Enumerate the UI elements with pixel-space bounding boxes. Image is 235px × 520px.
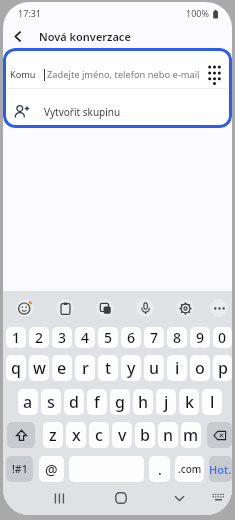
staticText: 3 xyxy=(58,328,67,347)
button[interactable]: y xyxy=(121,355,141,381)
staticText: j xyxy=(164,391,169,413)
staticText: m xyxy=(183,424,199,446)
staticText: 17:31 xyxy=(18,7,42,19)
staticText: v xyxy=(118,424,127,446)
button[interactable] xyxy=(125,291,165,325)
button[interactable]: s xyxy=(41,389,61,415)
button[interactable]: .com xyxy=(175,456,204,482)
staticText: z xyxy=(49,424,57,446)
staticText: 8 xyxy=(173,328,182,347)
button[interactable] xyxy=(45,291,85,325)
button[interactable]: 6 xyxy=(121,327,141,348)
button[interactable]: q xyxy=(6,355,26,381)
staticText: t xyxy=(105,357,112,379)
button[interactable]: @ xyxy=(39,456,64,482)
button[interactable] xyxy=(11,27,25,45)
staticText: Hot. xyxy=(209,462,232,477)
staticText: u xyxy=(149,357,160,379)
button[interactable] xyxy=(109,489,133,507)
button[interactable]: Komu xyxy=(10,61,221,88)
button[interactable]: f xyxy=(87,389,107,415)
button[interactable]: o xyxy=(190,355,210,381)
staticText: 4 xyxy=(81,328,90,347)
button[interactable]: 5 xyxy=(98,327,118,348)
staticText: Nová konverzace xyxy=(39,29,131,44)
button[interactable]: 4 xyxy=(75,327,95,348)
button[interactable]: 1 xyxy=(6,327,26,348)
staticText: r xyxy=(82,357,89,379)
staticText: 100% xyxy=(186,7,209,19)
button[interactable]: z xyxy=(43,422,63,448)
button[interactable]: i xyxy=(167,355,187,381)
staticText: 9 xyxy=(196,328,205,347)
button[interactable]: p xyxy=(213,355,232,381)
button[interactable]: u xyxy=(144,355,164,381)
staticText: b xyxy=(140,424,150,446)
staticText: .com xyxy=(178,462,202,476)
button[interactable]: m xyxy=(181,422,201,448)
staticText: e xyxy=(57,357,67,379)
button[interactable]: l xyxy=(202,389,222,415)
button[interactable] xyxy=(7,422,35,448)
button[interactable]: a xyxy=(18,389,38,415)
staticText: w xyxy=(33,357,46,379)
staticText: i xyxy=(175,357,180,379)
button[interactable] xyxy=(165,291,205,325)
button[interactable]: 8 xyxy=(167,327,187,348)
button[interactable]: g xyxy=(110,389,130,415)
staticText: Vytvořit skupinu xyxy=(44,105,121,119)
button[interactable]: d xyxy=(64,389,84,415)
button[interactable]: Hot. xyxy=(209,456,232,482)
button[interactable]: t xyxy=(98,355,118,381)
staticText: . xyxy=(158,460,162,479)
staticText: n xyxy=(163,424,174,446)
staticText: k xyxy=(185,391,194,413)
staticText: p xyxy=(218,357,228,379)
staticText: f xyxy=(94,391,100,413)
button[interactable] xyxy=(205,291,232,325)
button[interactable] xyxy=(5,291,45,325)
button[interactable] xyxy=(85,291,125,325)
button[interactable]: v xyxy=(112,422,132,448)
staticText: q xyxy=(11,357,21,379)
staticText: 6 xyxy=(127,328,136,347)
button[interactable]: r xyxy=(75,355,95,381)
staticText: 1 xyxy=(12,328,21,347)
button[interactable] xyxy=(47,489,71,507)
staticText: o xyxy=(195,357,205,379)
button[interactable]: b xyxy=(135,422,155,448)
button[interactable]: k xyxy=(179,389,199,415)
button[interactable]: h xyxy=(133,389,153,415)
button[interactable] xyxy=(208,65,221,85)
button[interactable]: n xyxy=(158,422,178,448)
staticText: c xyxy=(95,424,103,446)
staticText: d xyxy=(69,391,79,413)
button[interactable] xyxy=(206,489,230,507)
button[interactable]: 0 xyxy=(213,327,232,348)
button[interactable]: 7 xyxy=(144,327,164,348)
button[interactable]: w xyxy=(29,355,49,381)
button[interactable] xyxy=(207,422,232,448)
staticText: h xyxy=(138,391,149,413)
staticText: a xyxy=(23,391,33,413)
button[interactable]: e xyxy=(52,355,72,381)
button[interactable]: . xyxy=(149,456,170,482)
button[interactable]: Vytvořit skupinu xyxy=(14,96,232,128)
button[interactable]: 2 xyxy=(29,327,49,348)
staticText: y xyxy=(127,357,136,379)
staticText: 0 xyxy=(218,328,227,347)
staticText: 2 xyxy=(35,328,44,347)
button[interactable]: 3 xyxy=(52,327,72,348)
button[interactable] xyxy=(167,489,191,507)
button[interactable]: x xyxy=(66,422,86,448)
staticText: x xyxy=(72,424,81,446)
staticText: l xyxy=(210,391,215,413)
staticText: @ xyxy=(45,460,58,479)
staticText: 5 xyxy=(104,328,113,347)
staticText: g xyxy=(115,391,125,413)
button[interactable]: 9 xyxy=(190,327,210,348)
button[interactable]: !#1 xyxy=(6,456,33,482)
button[interactable]: j xyxy=(156,389,176,415)
button[interactable]: c xyxy=(89,422,109,448)
